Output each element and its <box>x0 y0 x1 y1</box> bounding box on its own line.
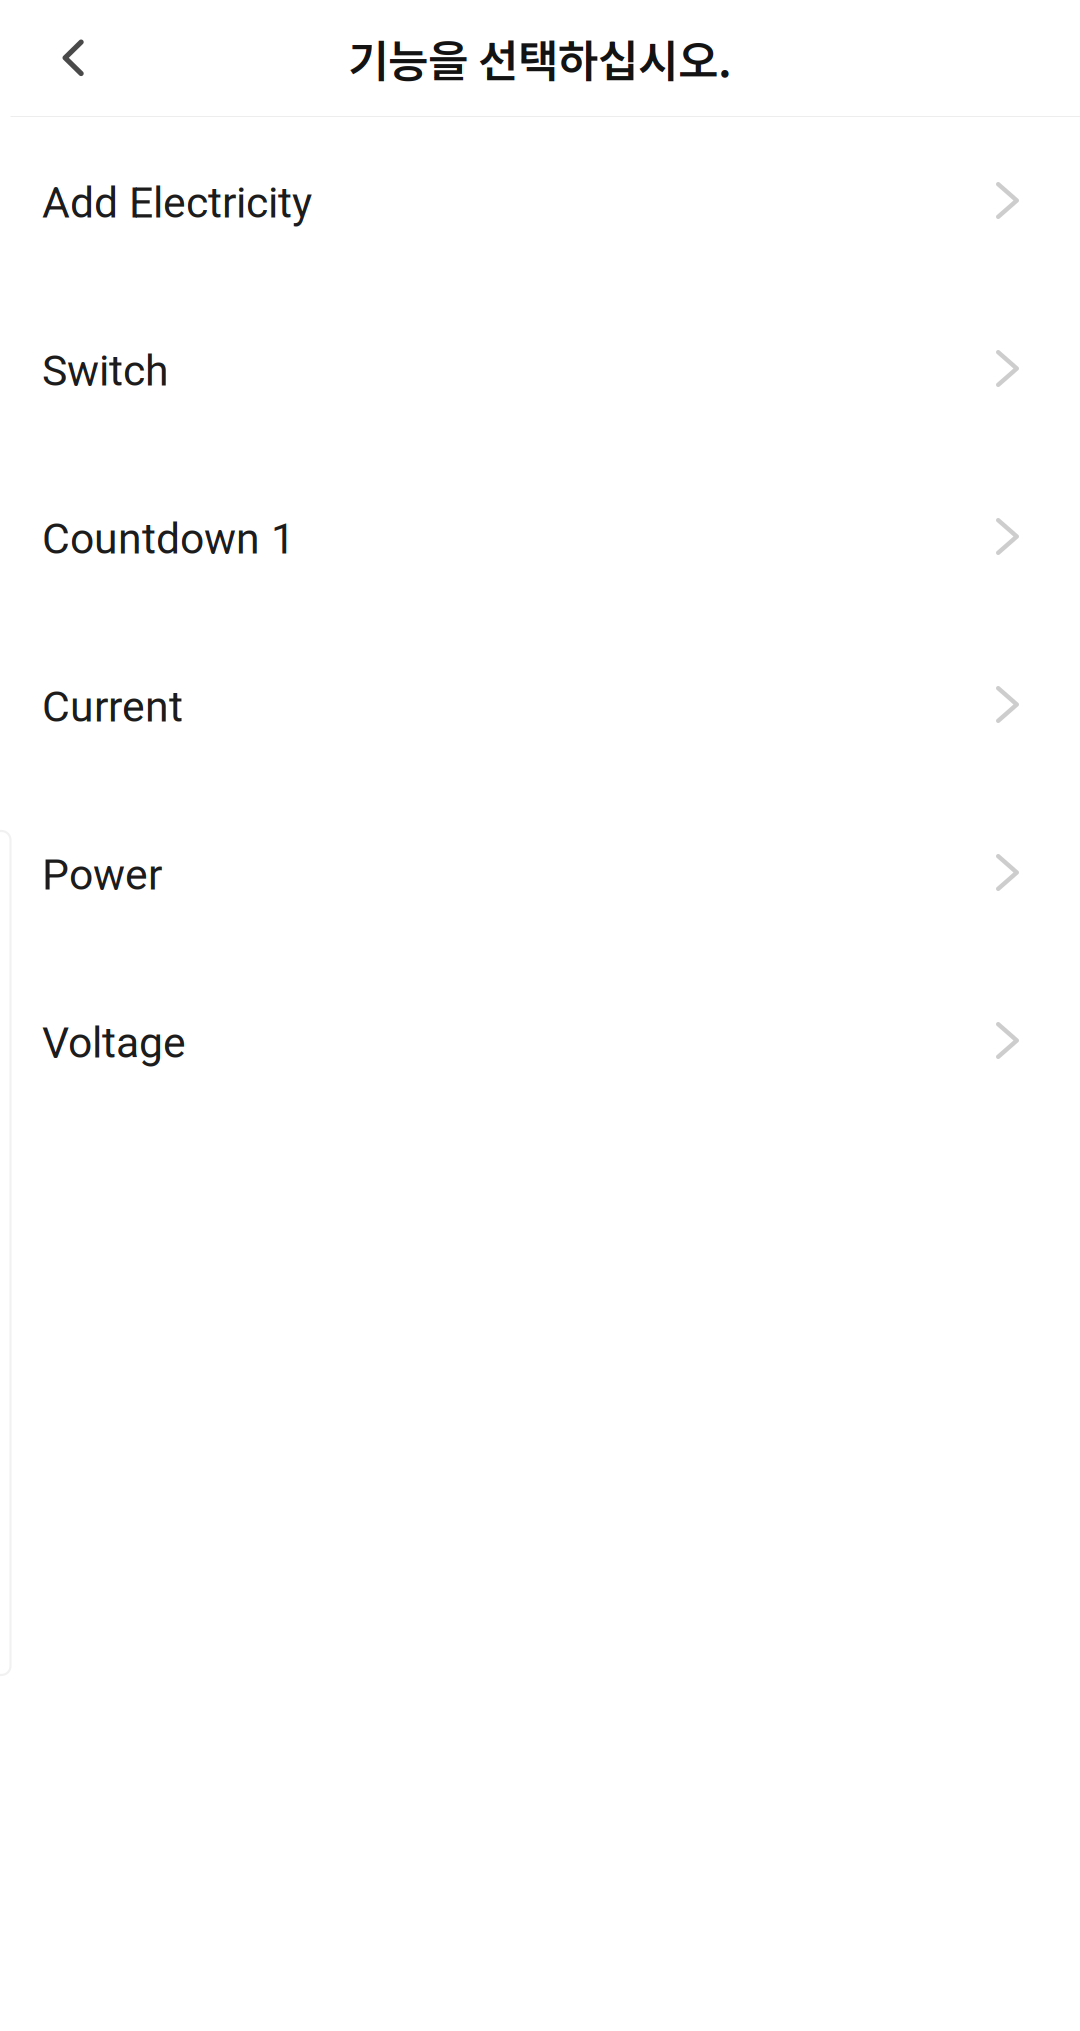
staticText: Switch <box>42 346 169 396</box>
button[interactable]: Back <box>0 0 146 116</box>
button[interactable]: Current <box>0 623 1080 791</box>
staticText: Current <box>42 682 183 732</box>
button[interactable]: Switch <box>0 287 1080 455</box>
button[interactable]: Power <box>0 791 1080 959</box>
button[interactable]: Voltage <box>0 959 1080 1127</box>
staticText: Voltage <box>42 1018 186 1068</box>
staticText: Power <box>42 850 162 900</box>
button[interactable]: Countdown 1 <box>0 455 1080 623</box>
button[interactable]: Add Electricity <box>0 119 1080 287</box>
staticText: 기능을 선택하십시오. <box>348 26 732 90</box>
staticText: Countdown 1 <box>42 514 295 564</box>
staticText: Add Electricity <box>42 178 312 228</box>
